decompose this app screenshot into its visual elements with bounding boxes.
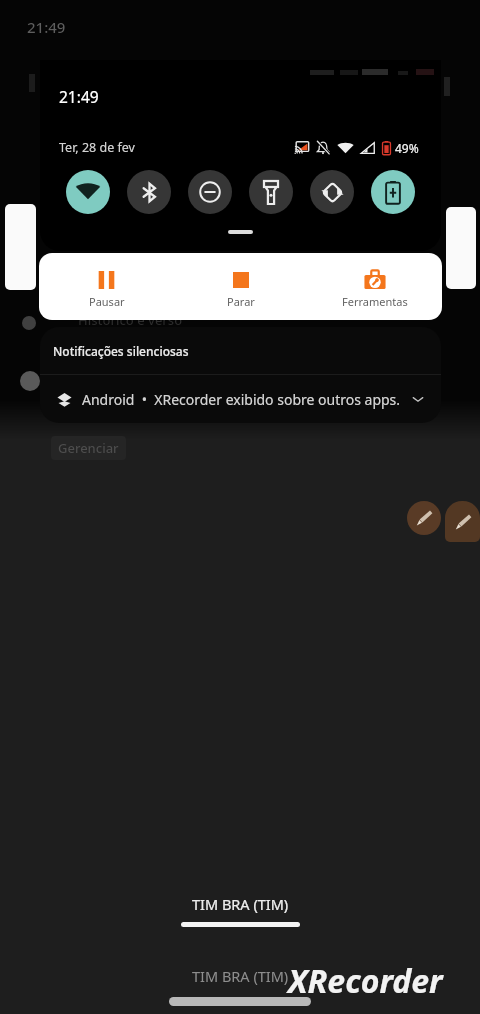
button[interactable]: Gerenciar <box>51 436 126 460</box>
staticText: Notificações silenciosas <box>53 343 189 359</box>
button[interactable]: Eraser <box>445 501 480 542</box>
button[interactable]: Auto rotate <box>310 170 354 214</box>
button[interactable]: Brush <box>407 501 441 535</box>
staticText: Parar <box>227 294 255 309</box>
staticText: Histórico e verso <box>78 311 183 329</box>
button[interactable]: Battery saver <box>371 170 415 214</box>
staticText: Android • XRecorder exibido sobre outros… <box>82 390 401 409</box>
staticText: Ter, 28 de fev <box>59 139 135 156</box>
button[interactable]: Pausar <box>39 253 174 309</box>
other: Expand <box>411 392 425 406</box>
staticText: Ferramentas <box>342 294 408 309</box>
staticText: TIM BRA (TIM) <box>192 966 289 986</box>
staticText: 21:49 <box>27 17 66 37</box>
button[interactable]: Android • XRecorder exibido sobre outros… <box>40 375 441 423</box>
button[interactable]: Notificações silenciosas <box>40 327 441 374</box>
staticText: 21:49 <box>59 86 99 107</box>
button[interactable]: Flashlight <box>249 170 293 214</box>
button[interactable]: Ferramentas <box>308 253 442 309</box>
staticText: XRecorder <box>288 959 443 1003</box>
staticText: Pausar <box>89 294 125 309</box>
button[interactable]: Do not disturb <box>188 170 232 214</box>
button[interactable]: Parar <box>174 253 308 309</box>
staticText: Gerenciar <box>58 439 119 457</box>
button[interactable]: Bluetooth <box>127 170 171 214</box>
staticText: TIM BRA (TIM) <box>192 894 289 914</box>
button[interactable]: Wi-Fi <box>66 170 110 214</box>
staticText: 49% <box>395 140 419 156</box>
